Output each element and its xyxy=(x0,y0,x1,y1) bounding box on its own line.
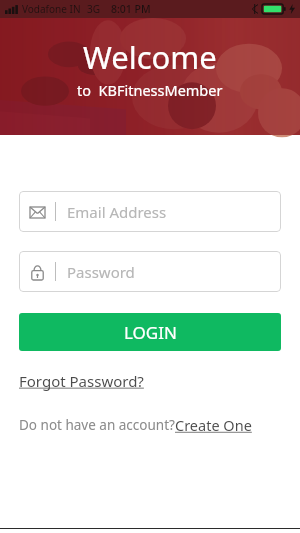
staticText: Welcome xyxy=(83,36,217,78)
staticText: to KBFitnessMember xyxy=(77,80,223,100)
staticText: Password xyxy=(67,262,135,282)
staticText: 8:01 PM xyxy=(111,2,151,16)
button[interactable]: Email Address xyxy=(19,191,281,232)
staticText: Do not have an account? xyxy=(19,416,175,434)
button[interactable]: Create One xyxy=(175,415,252,435)
staticText: 3G xyxy=(87,2,100,16)
button[interactable]: Forgot Password? xyxy=(19,369,144,393)
staticText: Create One xyxy=(175,415,252,435)
staticText: Email Address xyxy=(67,202,167,222)
staticText: Vodafone IN xyxy=(22,2,81,16)
staticText: Forgot Password? xyxy=(19,371,144,391)
button[interactable]: LOGIN xyxy=(19,313,281,351)
button[interactable]: Password xyxy=(19,251,281,292)
staticText: LOGIN xyxy=(124,321,177,344)
